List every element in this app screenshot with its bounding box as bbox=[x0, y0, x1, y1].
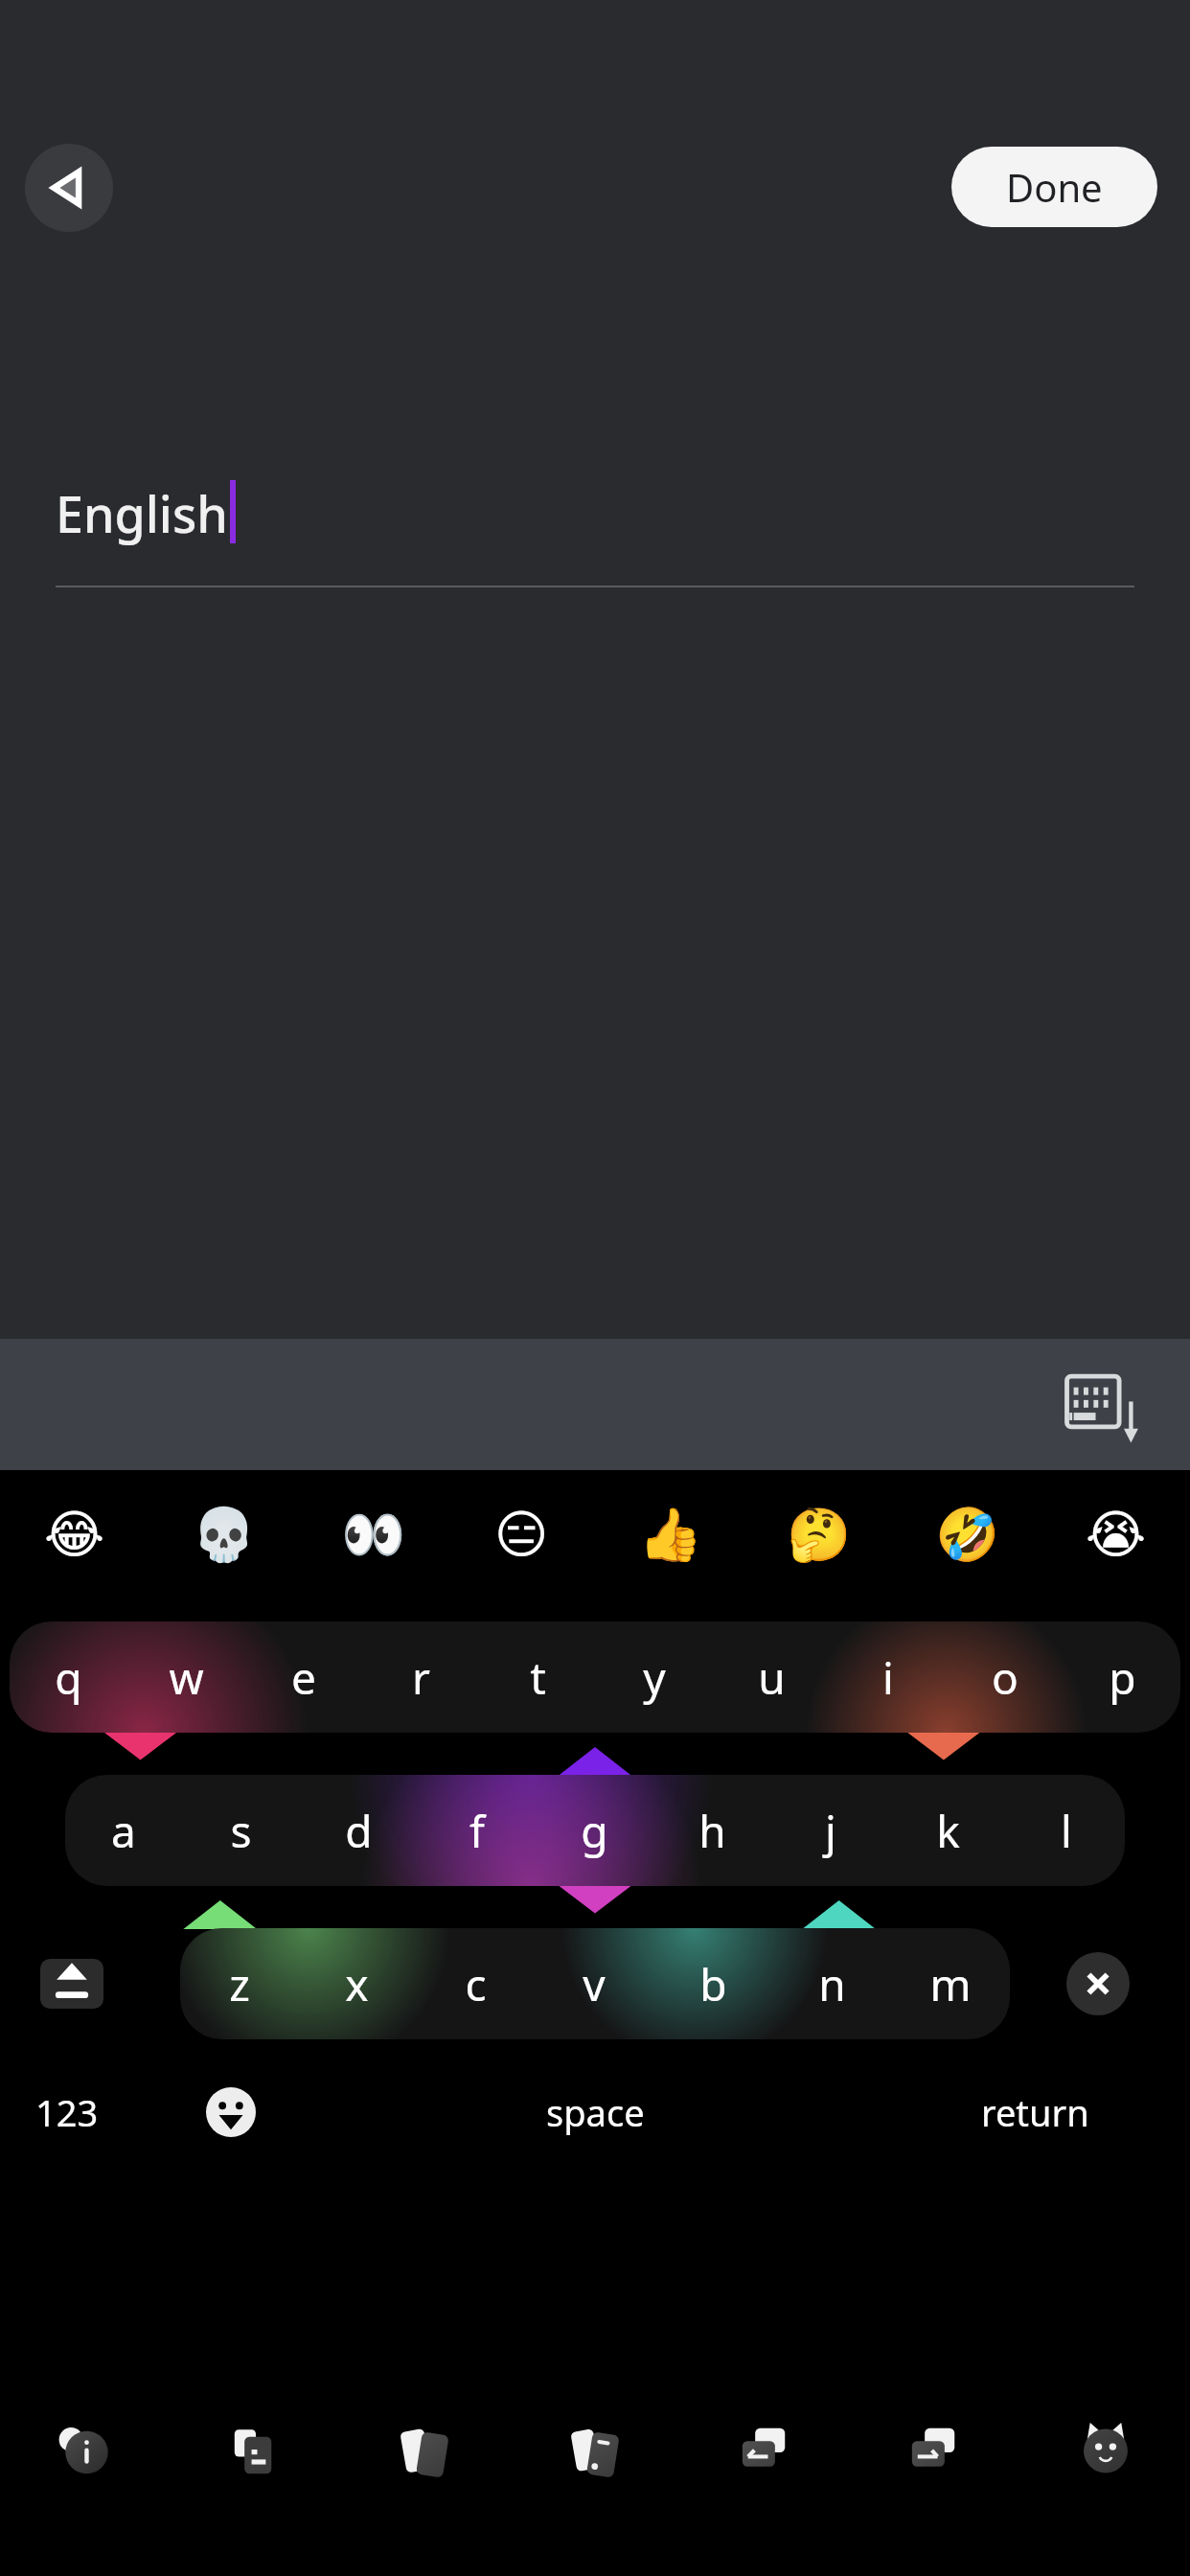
staticText: 👍 bbox=[638, 1505, 703, 1565]
button[interactable]: Themes bbox=[341, 2396, 512, 2576]
staticText: 😑 bbox=[494, 1505, 549, 1565]
button[interactable]: r bbox=[362, 1621, 479, 1733]
button[interactable]: Backspace bbox=[1066, 1952, 1130, 2015]
button[interactable]: w bbox=[127, 1621, 245, 1733]
button[interactable]: m bbox=[891, 1928, 1010, 2039]
button[interactable]: Info bbox=[0, 2396, 171, 2576]
button[interactable]: t bbox=[479, 1621, 596, 1733]
staticText: u bbox=[758, 1647, 786, 1708]
button[interactable]: 💀 bbox=[149, 1470, 299, 1599]
button[interactable]: 🤔 bbox=[744, 1470, 893, 1599]
button[interactable]: return bbox=[939, 2069, 1131, 2155]
button[interactable]: 🤣 bbox=[893, 1470, 1041, 1599]
staticText: b bbox=[699, 1954, 727, 2014]
button[interactable]: g bbox=[536, 1775, 653, 1886]
button[interactable]: c bbox=[416, 1928, 535, 2039]
button[interactable]: s bbox=[182, 1775, 300, 1886]
button[interactable]: x bbox=[298, 1928, 416, 2039]
staticText: s bbox=[230, 1801, 252, 1861]
staticText: 🤔 bbox=[787, 1505, 852, 1565]
staticText: English bbox=[56, 479, 228, 547]
staticText: 🤣 bbox=[935, 1505, 1000, 1565]
staticText: o bbox=[992, 1647, 1018, 1708]
staticText: 👀 bbox=[341, 1505, 406, 1565]
staticText: t bbox=[530, 1647, 546, 1708]
staticText: w bbox=[169, 1647, 204, 1708]
staticText: z bbox=[229, 1954, 250, 2014]
staticText: j bbox=[825, 1801, 836, 1861]
button[interactable]: i bbox=[830, 1621, 947, 1733]
button[interactable]: v bbox=[535, 1928, 653, 2039]
button[interactable]: Stickers bbox=[512, 2396, 681, 2576]
staticText: 😂 bbox=[44, 1505, 105, 1565]
button[interactable]: Back bbox=[25, 144, 113, 232]
button[interactable]: d bbox=[300, 1775, 418, 1886]
staticText: y bbox=[643, 1647, 666, 1708]
staticText: k bbox=[936, 1801, 960, 1861]
staticText: 💀 bbox=[192, 1505, 257, 1565]
staticText: x bbox=[345, 1954, 369, 2014]
button[interactable]: u bbox=[713, 1621, 830, 1733]
button[interactable]: Hide keyboard bbox=[1064, 1363, 1148, 1447]
button[interactable]: Done bbox=[951, 147, 1157, 227]
staticText: f bbox=[469, 1801, 485, 1861]
button[interactable]: 👍 bbox=[596, 1470, 744, 1599]
button[interactable]: h bbox=[653, 1775, 771, 1886]
staticText: d bbox=[345, 1801, 373, 1861]
staticText: c bbox=[465, 1954, 487, 2014]
button[interactable]: Clipboard bbox=[171, 2396, 341, 2576]
staticText: g bbox=[581, 1801, 608, 1861]
button[interactable]: Redo bbox=[851, 2396, 1020, 2576]
staticText: l bbox=[1061, 1801, 1072, 1861]
button[interactable]: l bbox=[1007, 1775, 1125, 1886]
button[interactable]: 😂 bbox=[0, 1470, 149, 1599]
staticText: q bbox=[55, 1647, 82, 1708]
button[interactable]: n bbox=[772, 1928, 891, 2039]
staticText: 😭 bbox=[1086, 1505, 1147, 1565]
staticText: Done bbox=[1006, 161, 1103, 213]
staticText: a bbox=[111, 1801, 136, 1861]
staticText: space bbox=[546, 2087, 645, 2137]
button[interactable]: p bbox=[1064, 1621, 1180, 1733]
staticText: return bbox=[981, 2087, 1089, 2137]
staticText: 123 bbox=[35, 2087, 99, 2137]
staticText: i bbox=[882, 1647, 894, 1708]
button[interactable]: 123 bbox=[21, 2069, 113, 2155]
staticText: e bbox=[291, 1647, 316, 1708]
staticText: v bbox=[583, 1954, 606, 2014]
button[interactable]: Translate bbox=[681, 2396, 851, 2576]
button[interactable]: Shift bbox=[40, 1959, 103, 2009]
button[interactable]: j bbox=[771, 1775, 889, 1886]
button[interactable]: e bbox=[245, 1621, 362, 1733]
button[interactable]: k bbox=[889, 1775, 1007, 1886]
staticText: h bbox=[698, 1801, 726, 1861]
button[interactable]: q bbox=[10, 1621, 127, 1733]
button[interactable]: Emoji bbox=[188, 2069, 274, 2155]
button[interactable]: Cat bbox=[1020, 2396, 1190, 2576]
button[interactable]: 👀 bbox=[299, 1470, 447, 1599]
button[interactable]: b bbox=[653, 1928, 772, 2039]
staticText: n bbox=[818, 1954, 846, 2014]
button[interactable]: o bbox=[947, 1621, 1064, 1733]
staticText: p bbox=[1109, 1647, 1136, 1708]
button[interactable]: space bbox=[470, 2069, 720, 2155]
button[interactable]: z bbox=[180, 1928, 298, 2039]
button[interactable]: 😑 bbox=[447, 1470, 596, 1599]
button[interactable]: y bbox=[596, 1621, 713, 1733]
button[interactable]: f bbox=[418, 1775, 536, 1886]
button[interactable]: 😭 bbox=[1041, 1470, 1190, 1599]
staticText: m bbox=[929, 1954, 972, 2014]
staticText: r bbox=[412, 1647, 430, 1708]
button[interactable]: a bbox=[65, 1775, 182, 1886]
